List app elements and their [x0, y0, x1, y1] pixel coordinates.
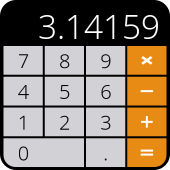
staticText: . — [103, 139, 108, 166]
button[interactable]: 4 — [3, 77, 43, 106]
button[interactable]: 1 — [3, 107, 43, 136]
button[interactable]: Equals — [127, 138, 166, 167]
button[interactable]: 6 — [86, 77, 125, 106]
staticText: 3 — [100, 109, 111, 135]
button[interactable]: Add — [127, 107, 166, 136]
button[interactable]: Subtract — [127, 77, 166, 106]
button[interactable]: Multiply — [127, 46, 166, 75]
button[interactable]: 2 — [45, 107, 84, 136]
staticText: 3.14159 — [38, 4, 160, 48]
staticText: 8 — [59, 47, 70, 74]
staticText: 9 — [100, 47, 111, 74]
button[interactable]: . — [86, 138, 125, 167]
staticText: 7 — [18, 47, 29, 74]
staticText: 5 — [59, 78, 70, 104]
staticText: 2 — [59, 109, 70, 135]
button[interactable]: 7 — [3, 46, 43, 75]
staticText: 1 — [18, 109, 29, 135]
staticText: 0 — [18, 139, 29, 166]
button[interactable]: 3 — [86, 107, 125, 136]
staticText: 6 — [100, 78, 111, 104]
button[interactable]: 0 — [3, 138, 84, 167]
button[interactable]: 8 — [45, 46, 84, 75]
button[interactable]: 5 — [45, 77, 84, 106]
staticText: 4 — [18, 78, 29, 104]
button[interactable]: 9 — [86, 46, 125, 75]
